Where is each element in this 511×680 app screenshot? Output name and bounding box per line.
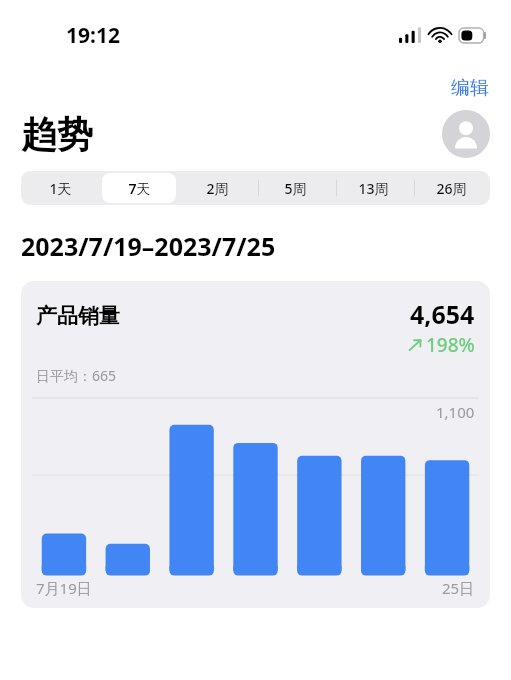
button[interactable]: 13周 — [336, 173, 410, 203]
staticText: 19:12 — [66, 21, 120, 50]
staticText: 产品销量 — [36, 303, 407, 329]
staticText: 日平均：665 — [36, 366, 117, 385]
staticText: 2023/7/19–2023/7/25 — [21, 229, 276, 263]
button[interactable]: Account — [442, 110, 490, 158]
staticText: 7天 — [128, 179, 151, 198]
staticText: 198% — [426, 332, 475, 358]
button[interactable]: 5周 — [258, 173, 332, 203]
button[interactable]: 26周 — [414, 173, 488, 203]
staticText: 7月19日 — [36, 578, 92, 598]
staticText: 25日 — [442, 578, 475, 598]
staticText: 5周 — [284, 179, 307, 198]
button[interactable]: 2周 — [180, 173, 254, 203]
staticText: 趋势 — [21, 112, 442, 157]
staticText: 26周 — [436, 179, 467, 198]
button[interactable]: 1天 — [23, 173, 98, 203]
staticText: 1,100 — [436, 402, 475, 422]
staticText: 4,654 — [410, 297, 475, 331]
staticText: 13周 — [358, 179, 389, 198]
staticText: 2周 — [206, 179, 229, 198]
button[interactable]: 7天 — [102, 173, 176, 203]
staticText: 1天 — [49, 179, 72, 198]
button[interactable]: 编辑 — [429, 72, 511, 104]
button[interactable]: 产品销量 — [21, 281, 490, 608]
